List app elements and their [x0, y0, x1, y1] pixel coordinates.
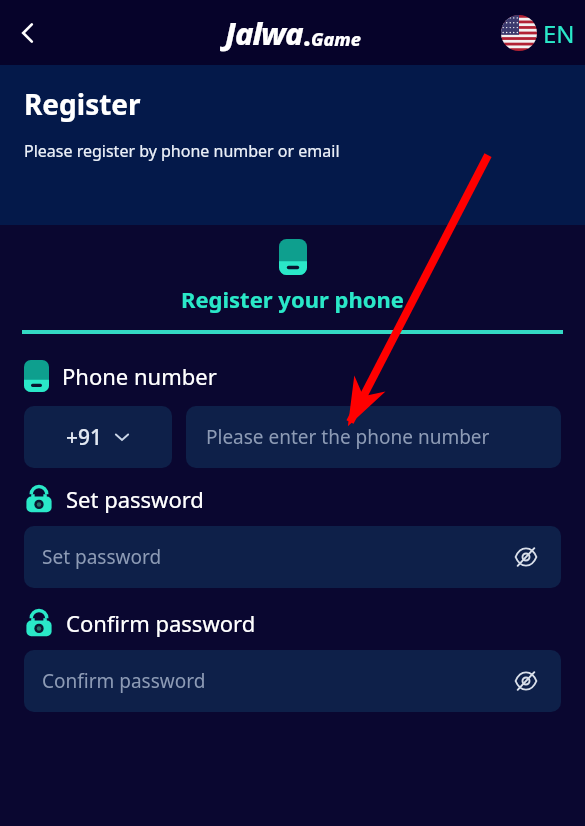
- button[interactable]: Set password: [24, 526, 561, 588]
- button[interactable]: Back: [6, 11, 50, 55]
- button[interactable]: Show password: [509, 664, 543, 698]
- staticText: Please register by phone number or email: [24, 140, 340, 162]
- staticText: Jalwa: [225, 12, 303, 54]
- button[interactable]: Please enter the phone number: [186, 406, 561, 468]
- button[interactable]: Language English: [501, 15, 575, 51]
- staticText: Please enter the phone number: [206, 424, 490, 450]
- staticText: Phone number: [62, 361, 217, 391]
- button[interactable]: Confirm password: [24, 650, 561, 712]
- staticText: Game: [311, 27, 361, 52]
- staticText: Register your phone: [181, 284, 404, 314]
- button[interactable]: Show password: [509, 540, 543, 574]
- staticText: +91: [66, 423, 103, 452]
- staticText: EN: [543, 17, 575, 50]
- staticText: .: [303, 17, 311, 54]
- button[interactable]: +91: [24, 406, 172, 468]
- staticText: Set password: [42, 544, 162, 570]
- staticText: Register: [24, 85, 141, 123]
- button[interactable]: Register your phone: [0, 239, 585, 314]
- other: Language English: [501, 15, 537, 51]
- staticText: Set password: [66, 484, 204, 514]
- staticText: Confirm password: [42, 668, 206, 694]
- staticText: Confirm password: [66, 608, 256, 638]
